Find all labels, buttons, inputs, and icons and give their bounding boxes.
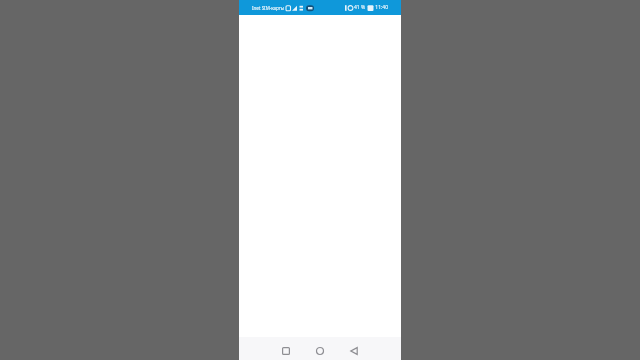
button[interactable] [308, 342, 332, 360]
staticText: 11:40 [374, 4, 389, 11]
staticText: Inet SIM-карты [252, 5, 285, 11]
staticText: 41 % [354, 4, 366, 11]
button[interactable] [274, 342, 298, 360]
button[interactable] [342, 342, 366, 360]
